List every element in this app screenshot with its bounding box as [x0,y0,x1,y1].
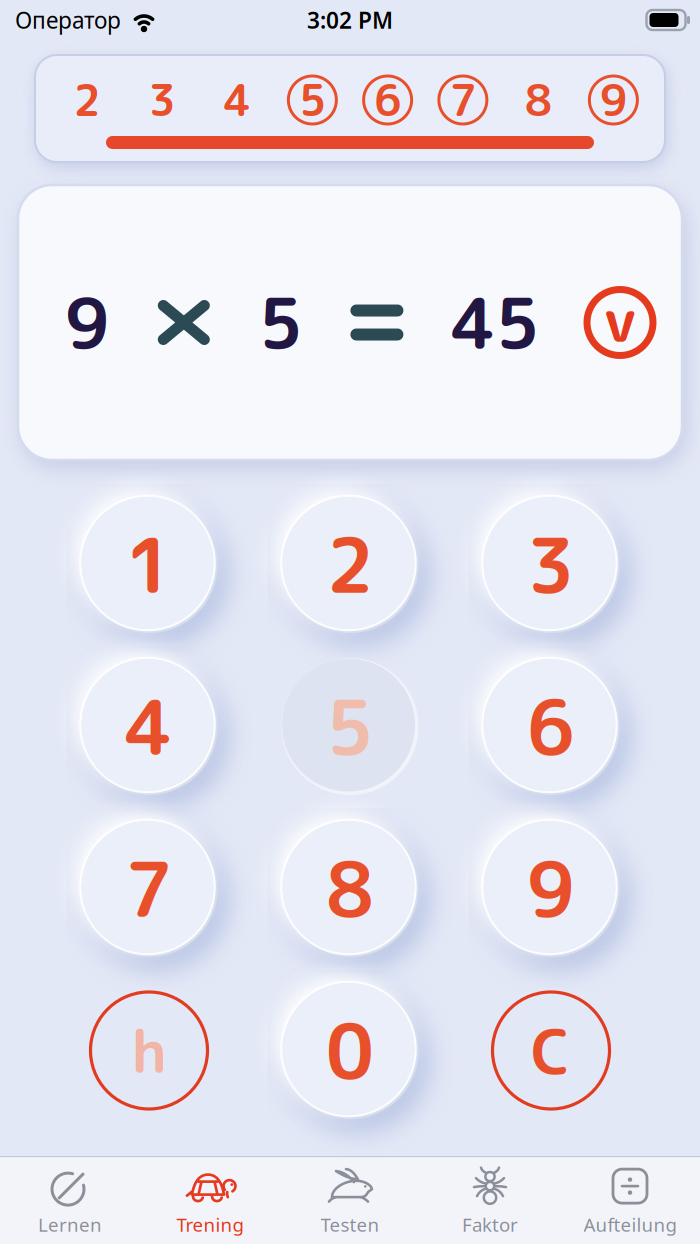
button[interactable]: 8 [281,820,418,957]
staticText: 45 [451,274,539,371]
button[interactable]: Trening [140,1164,280,1237]
staticText: 3 [148,70,175,130]
staticText: 4 [224,70,251,130]
button[interactable]: 9 [576,72,651,128]
staticText: h [131,1010,166,1091]
staticText: 5 [326,674,374,779]
staticText: 9 [65,274,109,371]
button[interactable]: 3 [482,496,619,633]
staticText: 5 [299,70,326,130]
staticText: 9 [527,836,575,941]
button[interactable]: 3 [124,72,199,128]
staticText: 7 [125,836,173,941]
staticText: Testen [320,1212,379,1237]
staticText: 2 [326,512,374,617]
staticText: 1 [125,512,173,617]
button[interactable]: Clear [482,982,619,1119]
button[interactable]: 0 [281,982,418,1119]
button[interactable]: 5 [275,72,350,128]
staticText: v [604,279,636,360]
button[interactable]: 2 [281,496,418,633]
button[interactable]: Aufteilung [560,1164,700,1237]
staticText: Aufteilung [583,1212,676,1237]
button[interactable]: 5 [281,658,418,795]
button[interactable]: 7 [425,72,500,128]
staticText: C [531,1007,571,1094]
button[interactable]: 4 [199,72,275,128]
staticText: Оператор [15,5,121,35]
staticText: 3 [527,512,575,617]
staticText: 8 [326,836,374,941]
button[interactable]: Hint [80,982,217,1119]
staticText: 4 [125,674,173,779]
button[interactable]: 7 [80,820,217,957]
button[interactable]: 6 [350,72,425,128]
button[interactable]: 6 [482,658,619,795]
button[interactable]: Faktor [420,1164,560,1237]
staticText: Lernen [38,1212,102,1237]
button[interactable]: 2 [49,72,124,128]
staticText: Trening [176,1212,243,1237]
button[interactable]: 4 [80,658,217,795]
staticText: Faktor [462,1212,518,1237]
staticText: 3:02 PM [307,5,393,35]
staticText: 9 [600,70,627,130]
button[interactable]: Check answer [587,282,653,363]
staticText: 6 [527,674,575,779]
staticText: 2 [73,70,100,130]
button[interactable]: Testen [280,1164,420,1237]
button[interactable]: 8 [500,72,576,128]
button[interactable]: 9 [482,820,619,957]
staticText: 6 [374,70,401,130]
staticText: 0 [326,998,374,1103]
staticText: 5 [259,274,303,371]
button[interactable]: 1 [80,496,217,633]
staticText: 7 [449,70,476,130]
staticText: 8 [525,70,552,130]
button[interactable]: Lernen [0,1164,140,1237]
